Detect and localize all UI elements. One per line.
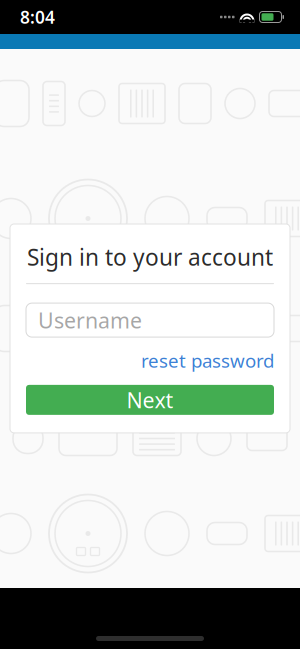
button[interactable]: Next — [26, 385, 274, 415]
staticText: 8:04 — [20, 5, 55, 28]
button[interactable]: reset password — [131, 344, 274, 377]
staticText: Sign in to your account — [27, 242, 273, 272]
staticText: Next — [126, 386, 173, 414]
staticText: reset password — [141, 348, 274, 373]
staticText: Username — [38, 306, 142, 334]
